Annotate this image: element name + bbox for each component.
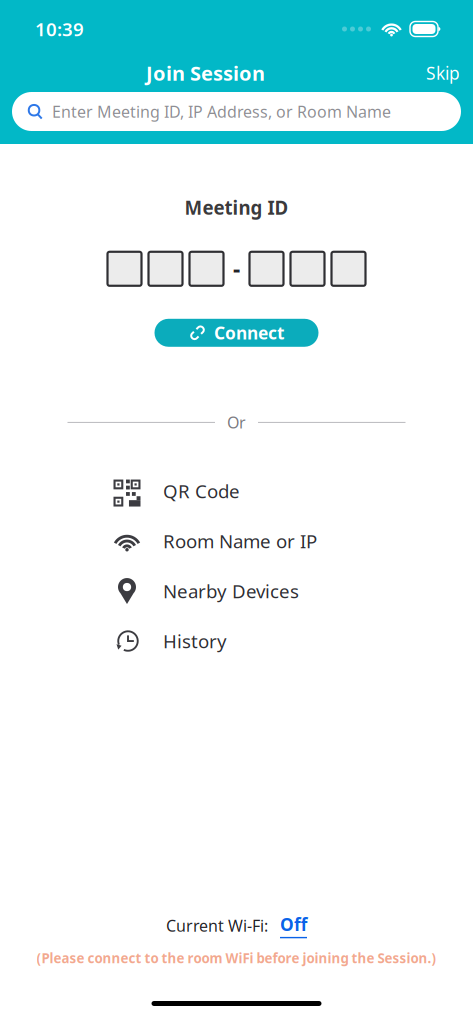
staticText: Or: [227, 412, 246, 433]
staticText: Connect: [214, 321, 285, 344]
staticText: Skip: [426, 61, 460, 84]
button[interactable]: Skip: [420, 56, 466, 89]
staticText: Nearby Devices: [163, 579, 299, 603]
button[interactable]: Connect: [154, 319, 318, 347]
staticText: Off: [280, 913, 307, 936]
button[interactable]: History: [0, 616, 473, 666]
staticText: Meeting ID: [184, 195, 288, 220]
staticText: (Please connect to the room WiFi before …: [36, 949, 436, 967]
staticText: Join Session: [146, 60, 265, 86]
button[interactable]: Enter Meeting ID, IP Address, or Room Na…: [12, 92, 461, 131]
button[interactable]: QR Code: [0, 466, 473, 516]
staticText: History: [163, 629, 227, 653]
staticText: Enter Meeting ID, IP Address, or Room Na…: [52, 101, 391, 122]
staticText: 10:39: [35, 17, 84, 41]
staticText: QR Code: [163, 479, 240, 503]
staticText: Current Wi-Fi:: [166, 915, 272, 936]
button[interactable]: Off: [272, 913, 307, 938]
button[interactable]: Room Name or IP: [0, 516, 473, 566]
staticText: -: [233, 254, 240, 284]
button[interactable]: Nearby Devices: [0, 566, 473, 616]
staticText: Room Name or IP: [163, 529, 317, 553]
